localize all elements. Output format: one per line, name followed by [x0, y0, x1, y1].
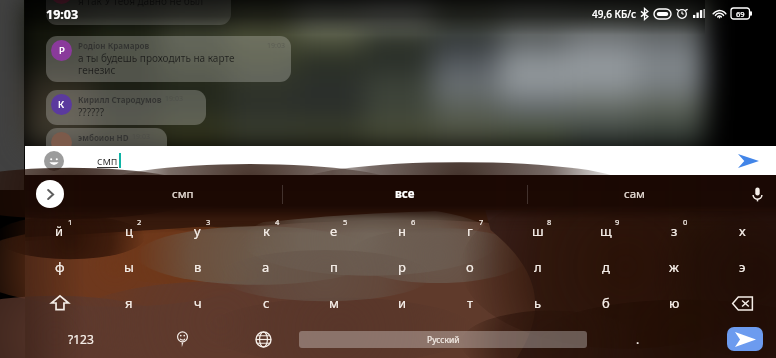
button[interactable]: ш	[504, 213, 572, 249]
staticText: ?123	[68, 331, 94, 347]
staticText: Кирилл Стародумов	[78, 94, 162, 105]
button[interactable]: все	[283, 175, 527, 213]
staticText: 1	[68, 217, 73, 227]
button[interactable]: о	[436, 249, 504, 285]
button[interactable]: ю	[640, 285, 708, 321]
button[interactable]: л	[504, 249, 572, 285]
staticText: я	[125, 294, 133, 312]
button[interactable]: б	[572, 285, 640, 321]
button[interactable]: п	[300, 249, 368, 285]
button[interactable]: ы	[94, 249, 163, 285]
staticText: сам	[624, 186, 645, 202]
staticText: 8	[547, 217, 552, 227]
staticText: ??????	[78, 105, 105, 119]
staticText: и	[398, 294, 407, 312]
staticText: 3	[206, 217, 211, 227]
button[interactable]: а	[232, 249, 300, 285]
button[interactable]: е	[300, 213, 368, 249]
button[interactable]: К	[46, 90, 206, 125]
button[interactable]: х	[708, 213, 776, 249]
button[interactable]: м	[300, 285, 368, 321]
button[interactable]: Send	[735, 148, 761, 174]
staticText: 69	[736, 9, 745, 19]
staticText: 2	[137, 217, 142, 227]
button[interactable]: .	[587, 321, 689, 357]
button[interactable]: щ	[572, 213, 640, 249]
button[interactable]: ?123	[25, 321, 137, 357]
staticText: смп	[172, 186, 194, 202]
button[interactable]: н	[368, 213, 436, 249]
button[interactable]: у	[163, 213, 232, 249]
button[interactable]: Backspace	[708, 285, 776, 321]
staticText: 0	[683, 217, 688, 227]
button[interactable]: э	[708, 249, 776, 285]
staticText: ш	[532, 222, 544, 240]
button[interactable]: Н	[46, 0, 231, 25]
button[interactable]: р	[368, 249, 436, 285]
staticText: ф	[55, 258, 65, 276]
button[interactable]: ч	[163, 285, 232, 321]
button[interactable]: Emoji	[42, 149, 66, 173]
button[interactable]: Expand suggestions	[36, 180, 64, 208]
button[interactable]: P	[46, 36, 291, 82]
button[interactable]: смп	[83, 175, 282, 213]
staticText: н	[398, 222, 406, 240]
staticText: смп	[97, 153, 118, 168]
button[interactable]: Русский	[299, 331, 587, 348]
button[interactable]: Send	[727, 327, 763, 351]
staticText: г	[467, 222, 473, 240]
staticText: а ты будешь проходить на карте генезис	[78, 51, 235, 77]
button[interactable]: эмбоион HD	[46, 128, 167, 160]
staticText: ч	[194, 294, 202, 312]
staticText: я так У тебя давно не был	[78, 0, 204, 8]
staticText: р	[398, 258, 406, 276]
button[interactable]: к	[232, 213, 300, 249]
button[interactable]: ф	[25, 249, 94, 285]
staticText: 19:03	[46, 6, 79, 23]
staticText: все	[395, 186, 415, 202]
button[interactable]: г	[436, 213, 504, 249]
button[interactable]: й	[25, 213, 94, 249]
button[interactable]: с	[232, 285, 300, 321]
staticText: 19:03	[267, 41, 285, 51]
staticText: ж	[669, 258, 679, 276]
button[interactable]: Voice input	[738, 175, 776, 213]
button[interactable]: Emoji	[137, 321, 227, 357]
staticText: 49,6 КБ/c	[592, 7, 636, 21]
staticText: 9	[615, 217, 620, 227]
staticText: к	[263, 222, 270, 240]
staticText: о	[466, 258, 474, 276]
staticText: д	[602, 258, 610, 276]
staticText: з	[671, 222, 678, 240]
staticText: 7	[479, 217, 484, 227]
button[interactable]: ь	[504, 285, 572, 321]
button[interactable]: я	[94, 285, 163, 321]
button[interactable]: ж	[640, 249, 708, 285]
button[interactable]: Change language	[227, 321, 299, 357]
staticText: 5	[343, 217, 348, 227]
staticText: ы	[124, 258, 134, 276]
staticText: е	[330, 222, 338, 240]
button[interactable]: т	[436, 285, 504, 321]
staticText: эмбоион HD	[78, 132, 129, 143]
staticText: ю	[669, 294, 680, 312]
button[interactable]: в	[163, 249, 232, 285]
button[interactable]: ц	[94, 213, 163, 249]
staticText: х	[739, 222, 746, 240]
button[interactable]: д	[572, 249, 640, 285]
staticText: в	[194, 258, 202, 276]
staticText: а	[262, 258, 270, 276]
staticText: P	[59, 44, 65, 57]
button[interactable]: сам	[528, 175, 740, 213]
staticText: п	[330, 258, 338, 276]
button[interactable]: и	[368, 285, 436, 321]
staticText: .	[636, 331, 640, 347]
staticText: у	[194, 222, 201, 240]
staticText: Родіон Крамаров	[78, 40, 150, 51]
staticText: Русский	[427, 334, 460, 346]
staticText: ь	[534, 294, 542, 312]
button[interactable]: Shift	[25, 285, 94, 321]
button[interactable]: з	[640, 213, 708, 249]
